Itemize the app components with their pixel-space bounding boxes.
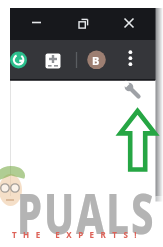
button[interactable] [120, 48, 140, 70]
button[interactable] [26, 12, 48, 36]
staticText: PUALS [17, 174, 156, 238]
button[interactable] [118, 12, 140, 36]
button[interactable] [74, 12, 96, 36]
button[interactable] [86, 50, 106, 70]
staticText: B [92, 53, 100, 68]
button[interactable] [9, 50, 29, 70]
staticText: THE EXPERTS! [12, 229, 144, 240]
button[interactable] [43, 50, 63, 70]
